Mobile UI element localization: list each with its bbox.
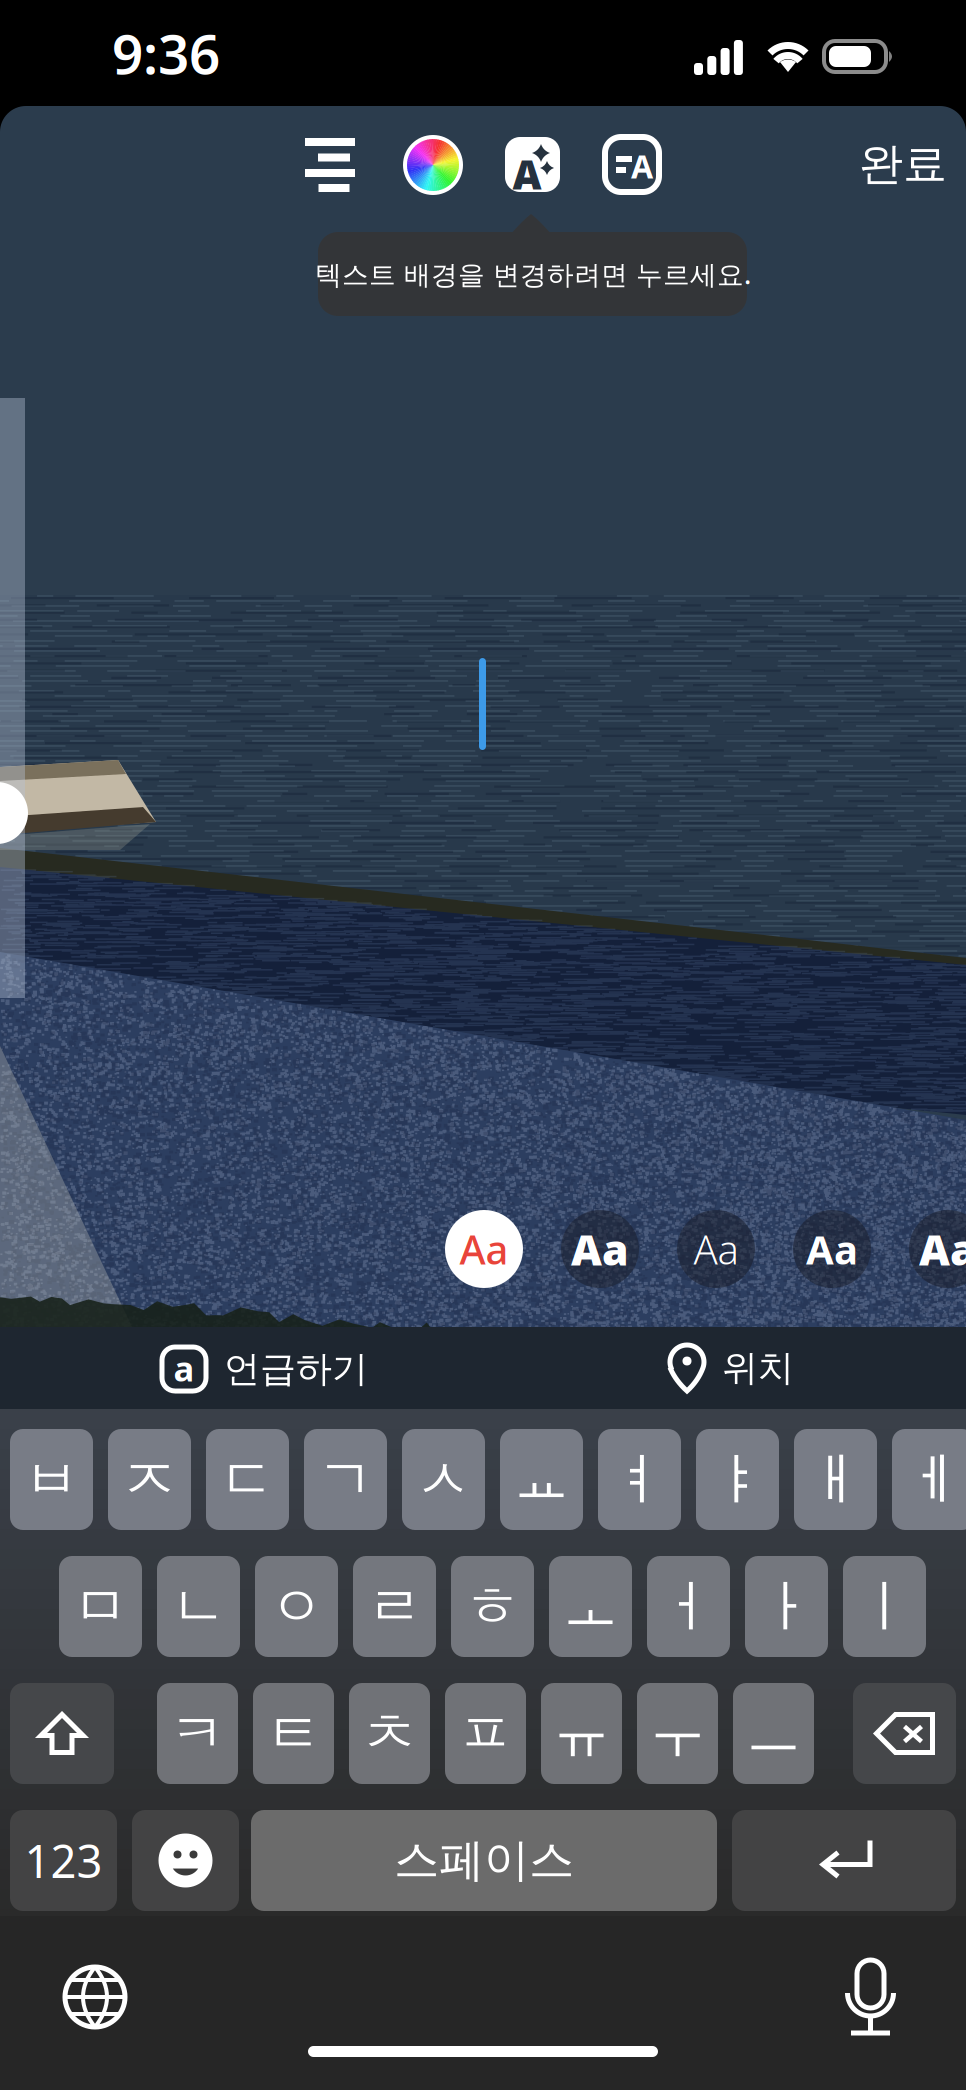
- staticText: ㅁ: [72, 1572, 128, 1641]
- button[interactable]: ㅁ: [59, 1556, 142, 1657]
- button[interactable]: ㅠ: [541, 1683, 622, 1784]
- button[interactable]: ㅑ: [696, 1429, 779, 1530]
- staticText: ㅏ: [758, 1572, 814, 1641]
- staticText: ㅊ: [361, 1699, 417, 1768]
- button[interactable]: ㅇ: [255, 1556, 338, 1657]
- button[interactable]: ㅛ: [500, 1429, 583, 1530]
- button[interactable]: ㅔ: [892, 1429, 966, 1530]
- button[interactable]: Shift: [10, 1683, 114, 1784]
- staticText: 스페이스: [394, 1833, 574, 1888]
- button[interactable]: Dictation: [840, 1960, 901, 2036]
- staticText: ㅋ: [169, 1699, 225, 1768]
- button[interactable]: a: [162, 1346, 368, 1392]
- button[interactable]: ㅌ: [253, 1683, 334, 1784]
- staticText: ㅈ: [121, 1445, 177, 1514]
- button[interactable]: Return: [732, 1810, 956, 1911]
- button[interactable]: ㅏ: [745, 1556, 828, 1657]
- staticText: ㅍ: [457, 1699, 513, 1768]
- button[interactable]: Font style Aa: [909, 1210, 966, 1288]
- staticText: 123: [24, 1830, 102, 1891]
- staticText: ㅛ: [513, 1445, 569, 1514]
- button[interactable]: ㄱ: [304, 1429, 387, 1530]
- staticText: ㄴ: [170, 1572, 226, 1641]
- button[interactable]: 위치: [668, 1344, 794, 1392]
- button[interactable]: Font style Aa: [793, 1210, 871, 1288]
- button[interactable]: Text effects: [505, 137, 560, 192]
- staticText: Aa: [919, 1221, 966, 1277]
- staticText: ㄹ: [366, 1572, 422, 1641]
- staticText: ㅣ: [856, 1572, 912, 1641]
- button[interactable]: ㅂ: [10, 1429, 93, 1530]
- button[interactable]: ㅓ: [647, 1556, 730, 1657]
- button[interactable]: ㅎ: [451, 1556, 534, 1657]
- staticText: 언급하기: [224, 1347, 368, 1391]
- button[interactable]: Font style Aa: [677, 1210, 755, 1288]
- staticText: ㅇ: [268, 1572, 324, 1641]
- button[interactable]: Text background: [605, 137, 659, 192]
- staticText: Aa: [571, 1221, 629, 1277]
- staticText: 텍스트 배경을 변경하려면 누르세요.: [315, 256, 751, 292]
- button[interactable]: Text colour: [403, 135, 463, 195]
- staticText: ㄷ: [219, 1445, 275, 1514]
- button[interactable]: ㅋ: [157, 1683, 238, 1784]
- staticText: ㅕ: [611, 1445, 667, 1514]
- staticText: 완료: [859, 137, 947, 191]
- staticText: ㅑ: [709, 1445, 765, 1514]
- button[interactable]: ㄷ: [206, 1429, 289, 1530]
- staticText: A: [631, 145, 653, 187]
- button[interactable]: ㅐ: [794, 1429, 877, 1530]
- staticText: ㅗ: [562, 1572, 618, 1641]
- button[interactable]: Emoji: [132, 1810, 239, 1911]
- button[interactable]: 스페이스: [251, 1810, 717, 1911]
- staticText: a: [173, 1345, 194, 1391]
- button[interactable]: Delete: [853, 1683, 956, 1784]
- staticText: ㄱ: [317, 1445, 373, 1514]
- button[interactable]: ㄹ: [353, 1556, 436, 1657]
- staticText: Aa: [806, 1222, 858, 1275]
- staticText: ㅅ: [415, 1445, 471, 1514]
- button[interactable]: Font style Aa: [445, 1210, 523, 1288]
- staticText: 9:36: [112, 17, 220, 89]
- button[interactable]: Next keyboard: [63, 1965, 127, 2029]
- button[interactable]: Font style Aa: [561, 1210, 639, 1288]
- staticText: ㅐ: [807, 1445, 863, 1514]
- button[interactable]: ㅅ: [402, 1429, 485, 1530]
- staticText: ㅓ: [660, 1572, 716, 1641]
- staticText: Aa: [693, 1222, 738, 1275]
- staticText: Aa: [459, 1222, 508, 1275]
- staticText: ㅎ: [464, 1572, 520, 1641]
- button[interactable]: ㅣ: [843, 1556, 926, 1657]
- button[interactable]: ㅊ: [349, 1683, 430, 1784]
- staticText: ㅜ: [649, 1699, 705, 1768]
- button[interactable]: 123: [10, 1810, 117, 1911]
- button[interactable]: Text alignment: [305, 138, 355, 192]
- staticText: ㅡ: [745, 1699, 801, 1768]
- staticText: ㅂ: [23, 1445, 79, 1514]
- button[interactable]: ㅈ: [108, 1429, 191, 1530]
- button[interactable]: ㅗ: [549, 1556, 632, 1657]
- button[interactable]: ㅡ: [733, 1683, 814, 1784]
- staticText: ㅌ: [265, 1699, 321, 1768]
- button[interactable]: ㅕ: [598, 1429, 681, 1530]
- staticText: A: [512, 147, 541, 200]
- button[interactable]: ㅍ: [445, 1683, 526, 1784]
- staticText: ㅠ: [553, 1699, 609, 1768]
- staticText: ㅔ: [905, 1445, 961, 1514]
- button[interactable]: ㄴ: [157, 1556, 240, 1657]
- staticText: 위치: [722, 1346, 794, 1390]
- button[interactable]: 완료: [840, 127, 966, 201]
- button[interactable]: ㅜ: [637, 1683, 718, 1784]
